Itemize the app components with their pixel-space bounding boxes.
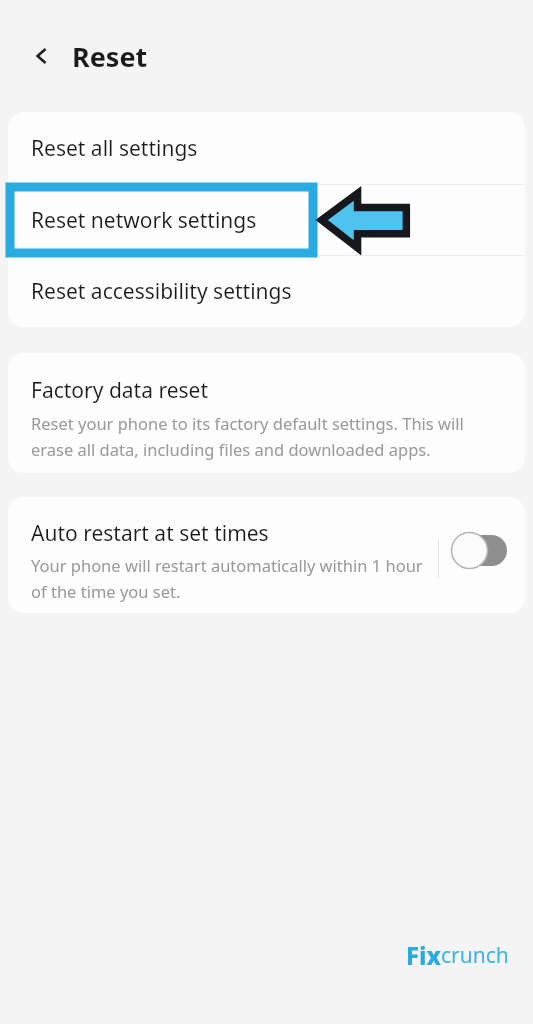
button[interactable]: Auto restart toggle, off (453, 533, 507, 573)
button[interactable]: Reset all settings (8, 112, 525, 184)
staticText: Reset all settings (31, 134, 198, 163)
staticText: Reset (72, 38, 148, 75)
button[interactable]: Factory data reset (8, 353, 525, 473)
staticText: crunch (441, 941, 509, 970)
button[interactable]: Reset network settings (8, 185, 525, 255)
staticText: Reset accessibility settings (31, 277, 292, 306)
button[interactable]: Reset accessibility settings (8, 256, 525, 327)
staticText: Reset your phone to its factory default … (31, 412, 502, 461)
staticText: Auto restart at set times (31, 519, 269, 548)
staticText: Fix (406, 939, 441, 972)
button[interactable]: Back (22, 36, 62, 76)
staticText: Factory data reset (31, 376, 208, 405)
staticText: Your phone will restart automatically wi… (31, 554, 432, 603)
staticText: Reset network settings (31, 206, 257, 235)
button[interactable]: Auto restart at set times (31, 519, 432, 603)
